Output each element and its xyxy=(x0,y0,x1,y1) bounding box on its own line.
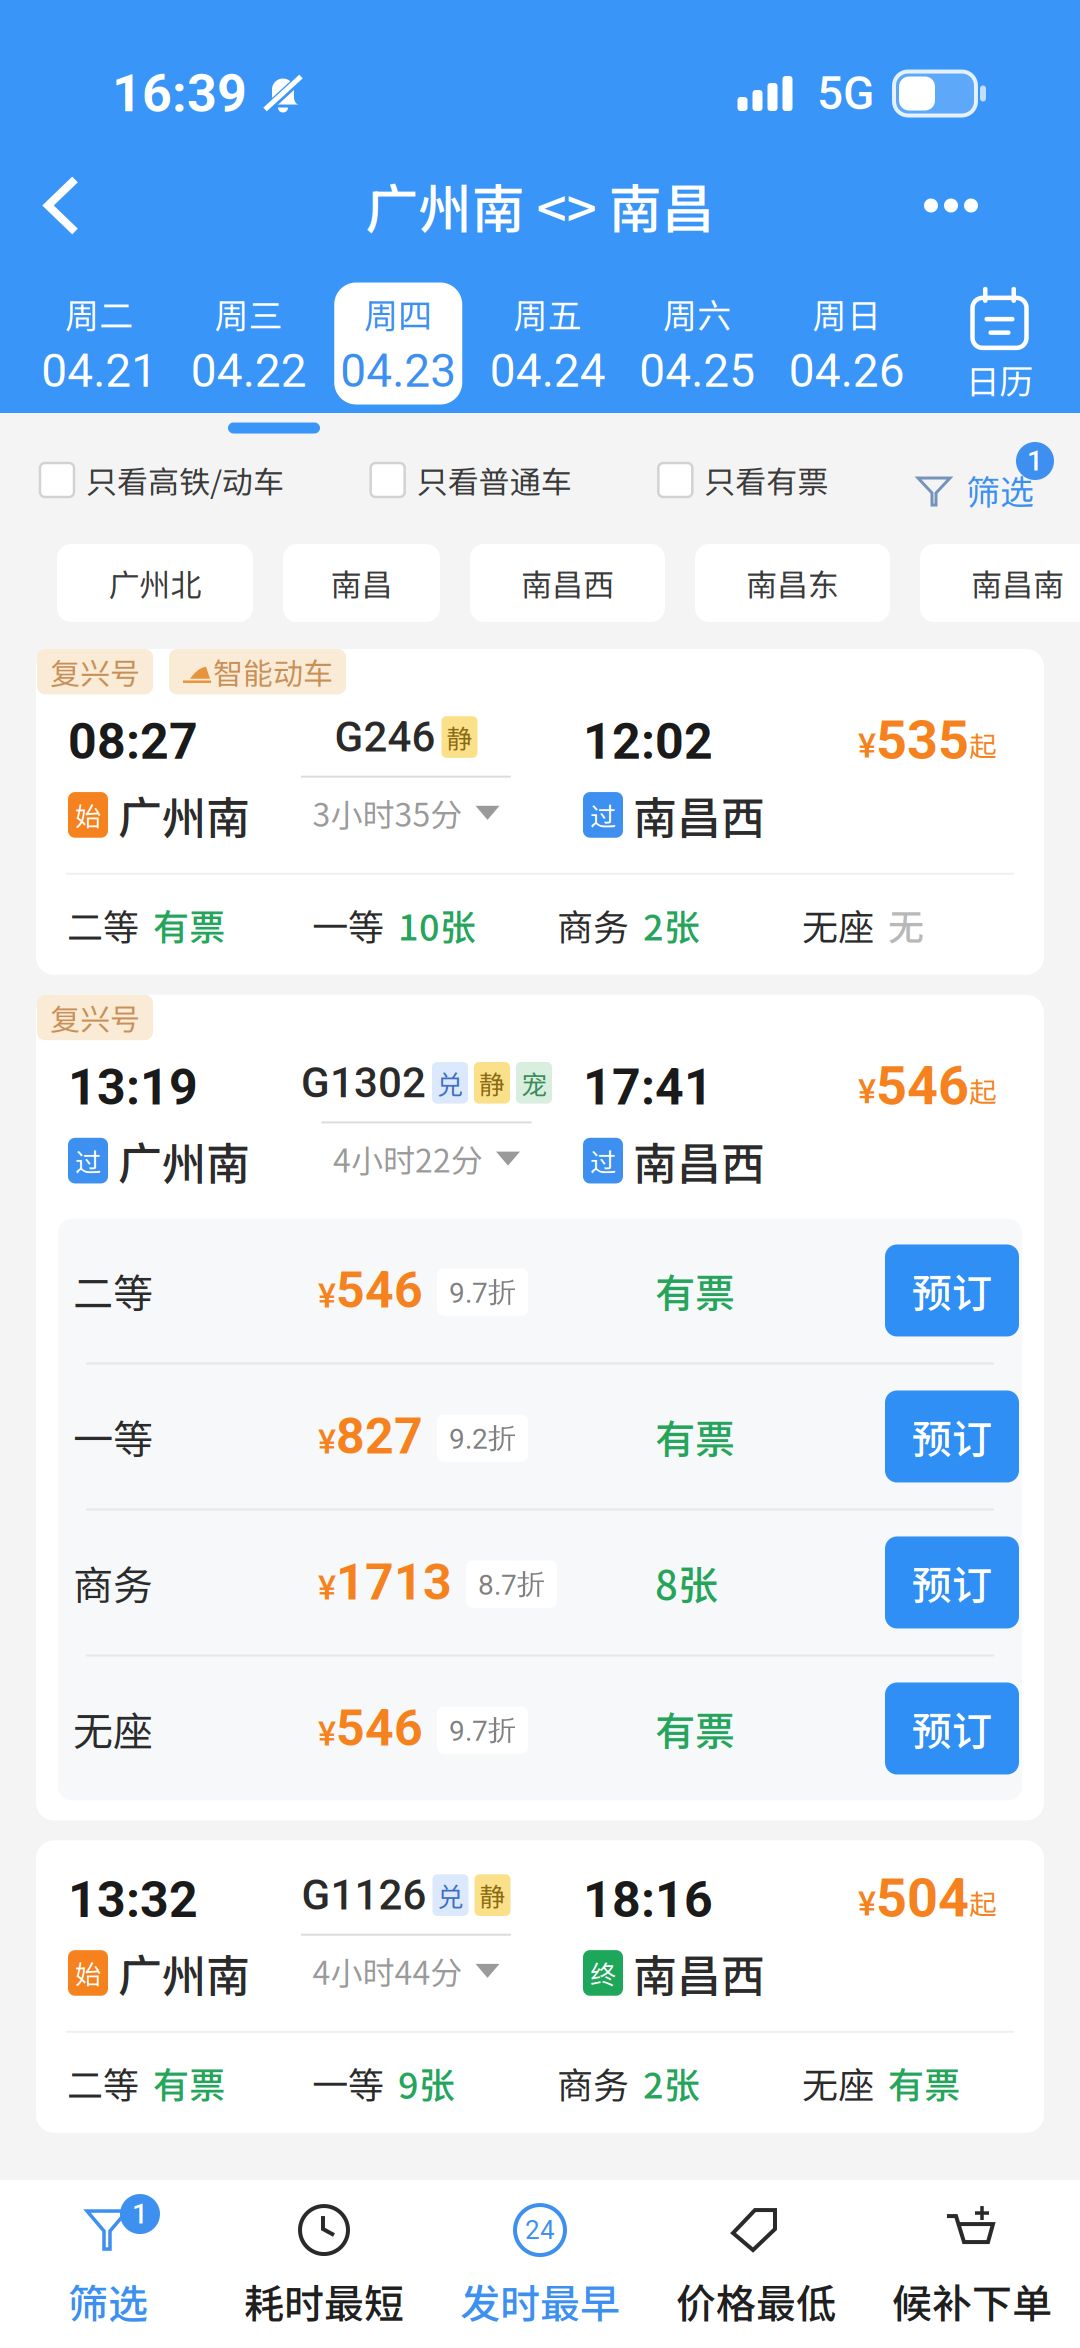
staticText: 宠 xyxy=(521,1064,547,1102)
staticText: 546 xyxy=(336,1699,423,1758)
staticText: 16:39 xyxy=(112,63,247,124)
staticText: 预订 xyxy=(912,1261,992,1319)
button[interactable]: 周日 xyxy=(772,276,921,410)
staticText: 有票 xyxy=(888,2057,960,2109)
staticText: 南昌南 xyxy=(971,561,1064,605)
staticText: 广州南 xyxy=(118,783,250,847)
button[interactable]: 1 xyxy=(0,2180,216,2348)
staticText: 12:02 xyxy=(583,712,713,771)
staticText: G1302 xyxy=(301,1058,426,1107)
staticText: 08:27 xyxy=(68,712,198,771)
button[interactable]: 只看普通车 xyxy=(371,442,572,518)
staticText: 04.22 xyxy=(191,344,307,398)
button[interactable]: 周五 xyxy=(473,276,622,410)
button[interactable]: 13:32 xyxy=(36,1840,1044,2133)
button[interactable]: 只看高铁/动车 xyxy=(40,442,284,518)
staticText: 筛选 xyxy=(966,465,1034,515)
staticText: 日历 xyxy=(965,355,1033,404)
button[interactable]: 候补下单 xyxy=(864,2180,1080,2348)
staticText: 周六 xyxy=(663,289,731,338)
staticText: 广州南 <> 南昌 xyxy=(365,167,714,244)
staticText: ¥ xyxy=(858,726,876,766)
staticText: 周日 xyxy=(813,289,881,338)
button[interactable]: 周四 xyxy=(323,276,473,410)
button[interactable]: 复兴号 xyxy=(36,649,1044,975)
staticText: 04.25 xyxy=(639,344,755,398)
button[interactable]: 周三 xyxy=(174,276,323,410)
button[interactable]: 预订 xyxy=(885,1244,1019,1336)
staticText: 只看高铁/动车 xyxy=(86,458,284,502)
button[interactable]: 耗时最短 xyxy=(216,2180,432,2348)
button[interactable]: 南昌西 xyxy=(470,544,665,622)
staticText: 商务 xyxy=(73,1553,153,1611)
staticText: 9.7折 xyxy=(449,1712,516,1748)
staticText: 二等 xyxy=(73,1261,153,1319)
button[interactable]: 广州北 xyxy=(57,544,253,622)
staticText: 827 xyxy=(336,1407,423,1466)
staticText: ¥ xyxy=(858,1884,876,1924)
staticText: 筛选 xyxy=(68,2272,148,2330)
staticText: G1126 xyxy=(301,1870,426,1920)
staticText: 起 xyxy=(969,724,997,765)
button[interactable]: 日历 xyxy=(921,280,1077,406)
staticText: 周三 xyxy=(215,289,283,338)
button[interactable]: 只看有票 xyxy=(658,442,828,518)
button[interactable]: 预订 xyxy=(885,1536,1019,1628)
staticText: 有票 xyxy=(655,1261,735,1319)
staticText: 复兴号 xyxy=(50,650,140,693)
staticText: 有票 xyxy=(655,1407,735,1465)
staticText: 04.23 xyxy=(340,344,456,398)
staticText: 发时最早 xyxy=(460,2272,620,2330)
staticText: 广州北 xyxy=(108,561,201,605)
staticText: 无座 xyxy=(802,899,874,951)
button[interactable]: 返回 xyxy=(20,152,129,258)
staticText: 04.26 xyxy=(789,344,905,398)
button[interactable]: 周六 xyxy=(622,276,772,410)
button[interactable]: 价格最低 xyxy=(648,2180,864,2348)
staticText: 13:19 xyxy=(68,1058,198,1117)
staticText: 9.2折 xyxy=(449,1420,516,1456)
staticText: 南昌西 xyxy=(633,783,765,847)
button[interactable]: 南昌 xyxy=(283,544,440,622)
button[interactable]: 24 xyxy=(432,2180,648,2348)
button[interactable]: 预订 xyxy=(885,1390,1019,1482)
staticText: 预订 xyxy=(912,1407,992,1465)
button[interactable]: 筛选 xyxy=(915,442,1054,518)
staticText: 南昌西 xyxy=(633,1941,765,2005)
staticText: 过 xyxy=(590,796,616,834)
staticText: 一等 xyxy=(73,1407,153,1465)
button[interactable]: 南昌东 xyxy=(695,544,890,622)
staticText: 兑 xyxy=(437,1876,463,1914)
staticText: 2张 xyxy=(643,2057,700,2109)
staticText: 广州南 xyxy=(118,1941,250,2005)
staticText: 8.7折 xyxy=(478,1566,545,1602)
staticText: 8张 xyxy=(655,1553,718,1611)
staticText: 4小时22分 xyxy=(333,1135,483,1182)
staticText: 9张 xyxy=(398,2057,455,2109)
staticText: 10张 xyxy=(398,899,476,951)
staticText: 3小时35分 xyxy=(312,790,462,836)
staticText: 535 xyxy=(876,708,969,772)
staticText: 一等 xyxy=(312,2057,384,2109)
staticText: 04.21 xyxy=(41,344,157,398)
staticText: 二等 xyxy=(67,2057,139,2109)
staticText: 预订 xyxy=(912,1553,992,1611)
staticText: 13:32 xyxy=(68,1870,198,1929)
staticText: 17:41 xyxy=(583,1058,713,1117)
button[interactable]: 南昌南 xyxy=(920,544,1080,622)
button[interactable]: 预订 xyxy=(885,1682,1019,1774)
staticText: 546 xyxy=(876,1054,969,1117)
staticText: 静 xyxy=(446,718,472,756)
staticText: 24 xyxy=(525,2215,555,2245)
staticText: 智能动车 xyxy=(213,650,333,693)
staticText: 南昌东 xyxy=(746,561,839,605)
staticText: 兑 xyxy=(437,1064,463,1102)
staticText: 广州南 xyxy=(118,1129,250,1192)
button[interactable]: 周二 xyxy=(24,276,174,410)
staticText: 2张 xyxy=(643,899,700,951)
staticText: 复兴号 xyxy=(50,996,140,1039)
staticText: 商务 xyxy=(557,899,629,951)
button[interactable]: 更多 xyxy=(885,155,1060,255)
staticText: 周二 xyxy=(65,289,133,338)
staticText: 5G xyxy=(817,66,874,120)
